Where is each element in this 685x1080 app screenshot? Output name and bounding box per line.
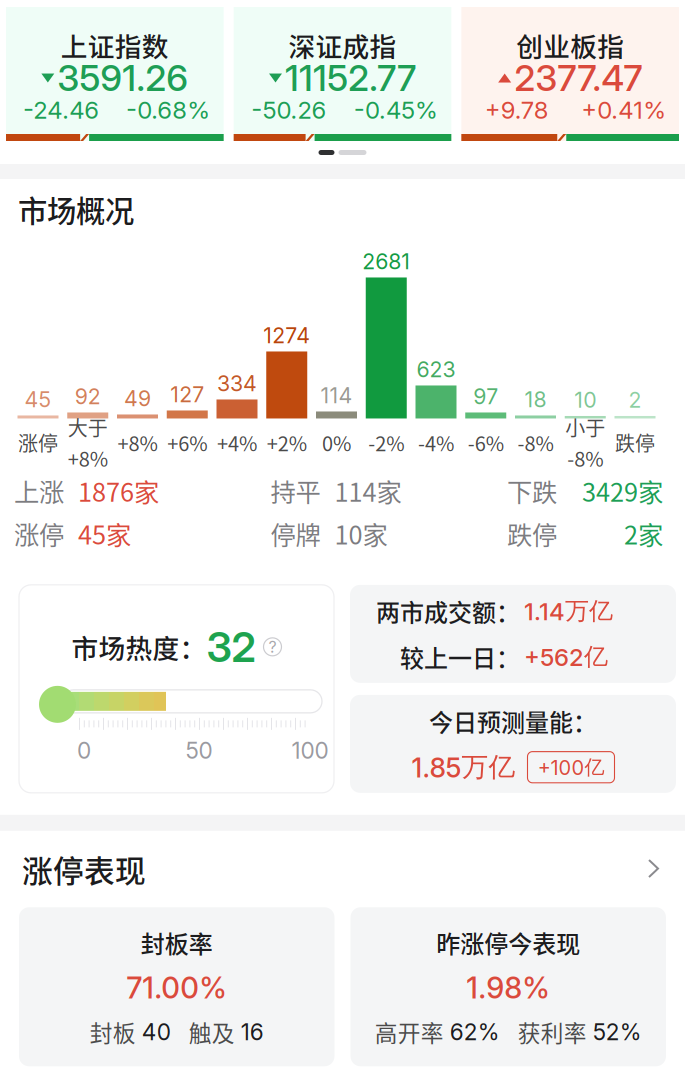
button[interactable]: 涨停表现 <box>0 831 685 907</box>
staticText: 11152.77 <box>285 56 416 100</box>
staticText: -24.46 <box>23 95 99 124</box>
staticText: 2家 <box>624 515 663 552</box>
staticText: 100 <box>291 737 328 764</box>
staticText: 1.14万亿 <box>524 596 613 626</box>
staticText: 上涨 <box>14 472 64 509</box>
staticText: 获利率 <box>518 1015 587 1048</box>
staticText: 3429家 <box>582 472 663 509</box>
staticText: 40 <box>142 1018 171 1046</box>
staticText: 49 <box>124 386 151 411</box>
staticText: 2 <box>628 387 641 413</box>
staticText: 16 <box>241 1018 264 1046</box>
staticText: 334 <box>217 371 257 396</box>
staticText: +8% <box>117 428 157 457</box>
staticText: 深证成指 <box>288 26 396 64</box>
staticText: 50 <box>185 737 212 764</box>
staticText: 两市成交额： <box>376 594 520 628</box>
staticText: 1876家 <box>78 472 159 509</box>
staticText: 2681 <box>362 249 410 274</box>
staticText: 71.00% <box>126 970 227 1005</box>
staticText: 0 <box>77 737 91 764</box>
staticText: -50.26 <box>251 95 326 124</box>
staticText: 3591.26 <box>57 56 188 100</box>
staticText: 10 <box>574 387 596 413</box>
staticText: +2% <box>267 428 307 457</box>
staticText: 2377.47 <box>514 56 642 100</box>
staticText: +4% <box>217 428 257 457</box>
staticText: 涨停表现 <box>22 847 146 891</box>
staticText: 今日预测量能： <box>429 704 597 738</box>
staticText: +562亿 <box>524 642 608 672</box>
staticText: 1274 <box>263 323 310 348</box>
staticText: 昨涨停今表现 <box>436 925 580 960</box>
staticText: 62% <box>450 1018 500 1046</box>
staticText: +8% <box>68 443 108 472</box>
staticText: 市场热度： <box>71 627 206 666</box>
staticText: 623 <box>416 357 455 382</box>
button[interactable]: 深证成指 <box>234 7 451 141</box>
staticText: 大于 <box>68 412 108 441</box>
staticText: 127 <box>170 382 204 407</box>
staticText: 较上一日： <box>400 639 520 674</box>
staticText: +0.41% <box>581 95 666 124</box>
staticText: -0.45% <box>354 95 438 124</box>
button[interactable]: 创业板指 <box>461 7 679 141</box>
staticText: 触及 <box>189 1015 235 1048</box>
staticText: 0% <box>322 428 351 457</box>
staticText: -8% <box>567 443 603 472</box>
staticText: -8% <box>517 428 553 457</box>
button[interactable]: 上证指数 <box>6 7 224 141</box>
staticText: 停牌 <box>270 515 320 552</box>
staticText: 1.98% <box>466 970 550 1005</box>
staticText: 上证指数 <box>61 26 169 64</box>
staticText: 封板 <box>90 1015 136 1048</box>
staticText: 跌停 <box>615 428 655 457</box>
staticText: 52% <box>593 1018 642 1046</box>
staticText: 市场概况 <box>18 188 134 230</box>
staticText: 10家 <box>334 515 387 552</box>
staticText: ? <box>268 637 276 657</box>
staticText: +6% <box>167 428 207 457</box>
staticText: 涨停 <box>18 428 58 457</box>
staticText: -2% <box>368 428 404 457</box>
staticText: 下跌 <box>507 472 557 509</box>
staticText: 创业板指 <box>516 26 624 64</box>
staticText: 45家 <box>78 515 131 552</box>
staticText: +9.78 <box>485 95 549 124</box>
staticText: 18 <box>524 387 546 412</box>
staticText: 封板率 <box>141 925 213 960</box>
staticText: 32 <box>206 622 255 672</box>
staticText: 45 <box>24 387 51 412</box>
staticText: -0.68% <box>126 95 210 124</box>
staticText: 114家 <box>334 472 401 509</box>
staticText: 持平 <box>270 472 320 509</box>
staticText: 92 <box>75 384 101 409</box>
staticText: 小于 <box>565 412 605 441</box>
staticText: -6% <box>468 428 504 457</box>
staticText: 高开率 <box>375 1015 444 1048</box>
staticText: 97 <box>473 384 498 409</box>
staticText: 跌停 <box>507 515 557 552</box>
staticText: 114 <box>320 383 352 408</box>
staticText: 1.85万亿 <box>411 750 515 784</box>
staticText: 涨停 <box>14 515 64 552</box>
staticText: +100亿 <box>537 755 604 780</box>
staticText: -4% <box>418 428 454 457</box>
